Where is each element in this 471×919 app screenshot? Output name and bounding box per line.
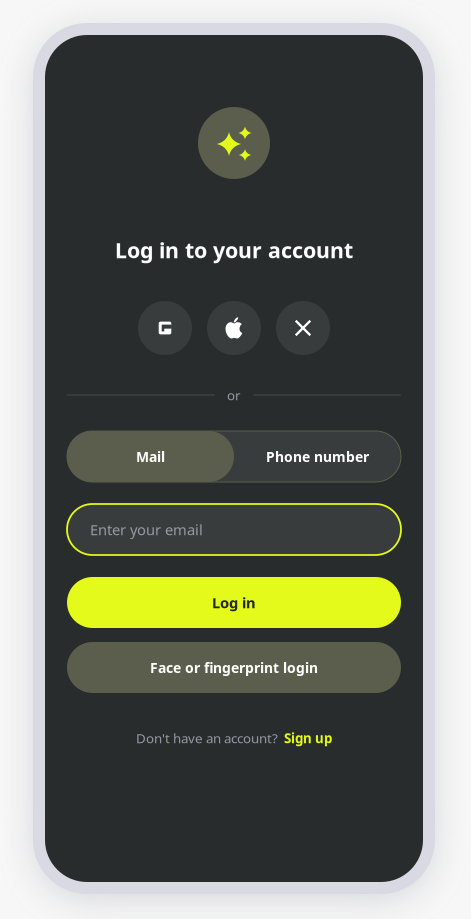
button[interactable]: Mail xyxy=(67,431,234,482)
button[interactable]: Don't have an account? xyxy=(136,729,332,747)
button[interactable]: Sign in with Apple xyxy=(207,301,261,355)
button[interactable]: Phone number xyxy=(234,431,401,482)
button[interactable]: Face or fingerprint login xyxy=(67,642,401,693)
button[interactable]: Sign in with Google xyxy=(138,301,192,355)
staticText: Sign up xyxy=(284,729,332,747)
button[interactable]: Sign in with X xyxy=(276,301,330,355)
button[interactable]: Log in xyxy=(67,577,401,628)
staticText: Log in to your account xyxy=(115,236,353,264)
staticText: Face or fingerprint login xyxy=(150,658,318,677)
staticText: Mail xyxy=(136,447,165,466)
staticText: Don't have an account? xyxy=(136,729,278,747)
staticText: Phone number xyxy=(266,447,369,466)
staticText: Enter your email xyxy=(90,520,203,539)
staticText: Log in xyxy=(212,593,256,612)
staticText: or xyxy=(227,386,241,404)
